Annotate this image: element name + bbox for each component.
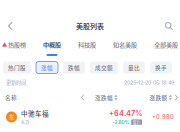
staticText: 中驰车福 xyxy=(21,109,49,118)
button[interactable]: 涨跌额 xyxy=(149,93,172,101)
button[interactable]: Previous columns xyxy=(79,93,86,102)
staticText: AZI xyxy=(21,119,29,125)
button[interactable]: Search xyxy=(159,17,180,35)
staticText: 成交额 xyxy=(95,63,113,71)
button[interactable]: Back xyxy=(0,17,18,35)
button[interactable]: 科技股 xyxy=(78,40,96,56)
staticText: 中概股 xyxy=(43,40,61,49)
button[interactable]: 量比 xyxy=(123,61,145,73)
staticText: 热门股 xyxy=(8,63,26,71)
staticText: +64.47% xyxy=(109,109,142,118)
button[interactable]: 知名美股 xyxy=(113,40,137,56)
staticText: 涨幅 xyxy=(41,63,53,71)
staticText: 盘后 xyxy=(133,119,141,125)
staticText: -2.80% xyxy=(113,119,130,125)
button[interactable]: 涨幅 xyxy=(36,61,58,73)
staticText: 名称 xyxy=(5,93,17,101)
button[interactable]: 换手 xyxy=(150,61,172,73)
button[interactable]: 跌幅 xyxy=(63,61,85,73)
staticText: 车 xyxy=(9,113,14,121)
staticText: 2025-12-20 05:18:49 xyxy=(124,79,174,86)
staticText: 跌幅 xyxy=(68,63,80,71)
button[interactable]: 热股榜 xyxy=(2,40,26,56)
staticText: 更新时间 xyxy=(6,79,26,86)
staticText: 涨跌幅 xyxy=(95,93,113,101)
staticText: +0.980 xyxy=(152,113,174,120)
staticText: 换手 xyxy=(155,63,167,71)
staticText: 科技股 xyxy=(78,40,96,49)
button[interactable]: 热门股 xyxy=(3,61,31,73)
staticText: 涨跌额 xyxy=(149,93,167,101)
staticText: 量比 xyxy=(128,63,140,71)
button[interactable]: Next columns xyxy=(174,94,179,101)
button[interactable]: 涨跌幅 xyxy=(95,93,117,101)
staticText: 知名美股 xyxy=(113,40,137,49)
staticText: 热股榜 xyxy=(8,40,26,49)
staticText: 全部美股 xyxy=(154,40,178,49)
button[interactable]: 成交额 xyxy=(90,61,118,73)
button[interactable]: 中概股 xyxy=(43,40,61,56)
staticText: 美股列表 xyxy=(76,21,104,31)
button[interactable]: 全部美股 xyxy=(154,40,178,56)
